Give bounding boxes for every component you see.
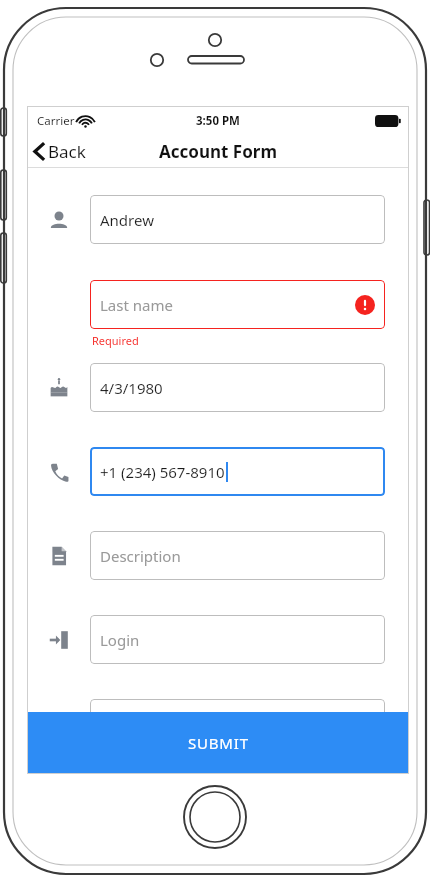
staticText: 4/3/1980 [100,378,163,398]
other: Phone [48,461,70,483]
staticText: SUBMIT [188,733,249,753]
button[interactable] [90,699,385,748]
button[interactable]: Last name [90,280,385,329]
staticText: Account Form [159,140,277,163]
button[interactable]: 4/3/1980 [90,363,385,412]
other: First name [48,209,70,231]
button[interactable]: Login [90,615,385,664]
staticText: Carrier [37,113,75,129]
staticText: +1 (234) 567-8910 [100,462,225,482]
button[interactable]: SUBMIT [28,712,408,773]
other: Login [48,629,70,651]
button[interactable]: Description [90,531,385,580]
other: Birthday [48,377,70,399]
staticText: 3:50 PM [196,113,240,129]
other: Error [355,295,375,315]
staticText: Back [48,140,86,163]
button[interactable]: Andrew [90,195,385,244]
other: Description [48,545,70,567]
button[interactable]: +1 (234) 567-8910 [90,447,385,496]
staticText: Last name [100,295,173,315]
staticText: Required [92,333,139,348]
staticText: Andrew [100,210,154,230]
button[interactable]: Back [34,134,86,168]
staticText: Login [100,630,140,650]
staticText: Description [100,546,181,566]
